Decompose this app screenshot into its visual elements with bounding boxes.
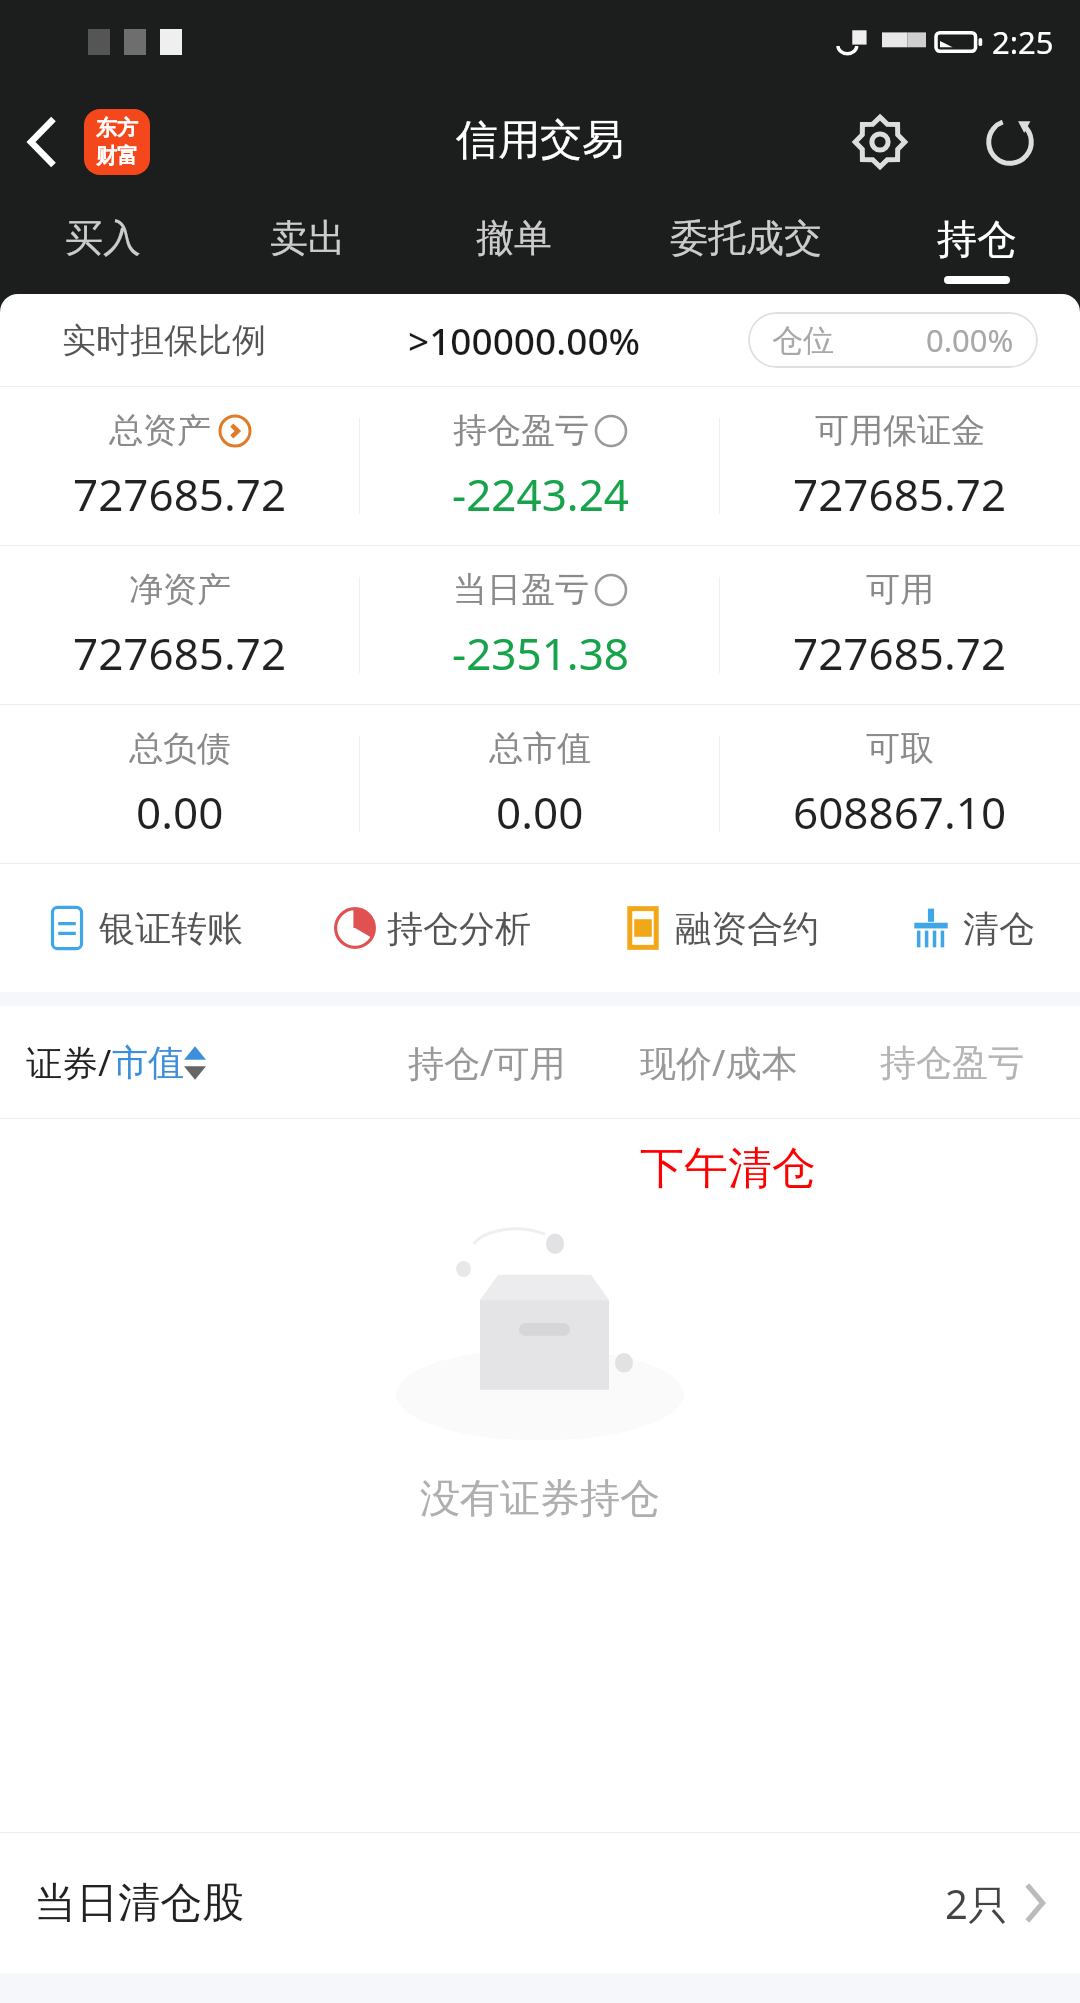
staticText: 727685.72 <box>793 464 1007 524</box>
staticText: 买入 <box>65 214 141 262</box>
staticText: 市值 <box>112 1040 184 1085</box>
staticText: 财富 <box>96 143 138 169</box>
staticText: 东方 <box>96 115 138 141</box>
staticText: 727685.72 <box>73 623 287 683</box>
staticText: 可用 <box>866 568 934 611</box>
staticText: 当日盈亏 <box>453 568 589 611</box>
staticText: 委托成交 <box>670 214 822 262</box>
staticText: >100000.00% <box>408 315 641 365</box>
staticText: 总资产 <box>109 409 211 452</box>
staticText: -2243.24 <box>452 464 629 524</box>
staticText: 净资产 <box>129 568 231 611</box>
staticText: 持仓分析 <box>387 906 531 951</box>
staticText: -2351.38 <box>452 623 629 683</box>
staticText: 2只 <box>945 1876 1008 1931</box>
button[interactable]: East Money logo <box>84 109 150 175</box>
button[interactable]: 卖出 <box>205 200 411 294</box>
button[interactable]: Back <box>0 99 86 185</box>
staticText: 总市值 <box>489 727 591 770</box>
staticText: 总负债 <box>129 727 231 770</box>
button[interactable]: 买入 <box>0 200 205 294</box>
staticText: 卖出 <box>270 214 346 262</box>
button[interactable]: 仓位 <box>748 312 1038 368</box>
staticText: 融资合约 <box>675 906 819 951</box>
staticText: 信用交易 <box>456 114 624 167</box>
staticText: 持仓盈亏 <box>453 409 589 452</box>
staticText: 下午清仓 <box>640 1141 816 1196</box>
button[interactable]: 银证转账 <box>0 864 288 992</box>
staticText: 0.00% <box>926 319 1014 361</box>
button[interactable]: 委托成交 <box>617 200 874 294</box>
staticText: 当日清仓股 <box>34 1877 244 1930</box>
staticText: 0.00 <box>136 782 224 842</box>
staticText: 可取 <box>866 727 934 770</box>
button[interactable]: 持仓盈亏 <box>880 1040 1024 1085</box>
staticText: 727685.72 <box>793 623 1007 683</box>
staticText: 实时担保比例 <box>62 319 266 362</box>
staticText: 仓位 <box>772 321 834 360</box>
button[interactable]: 当日清仓股 <box>0 1833 1080 1973</box>
button[interactable]: 持仓/可用 <box>408 1038 566 1087</box>
button[interactable]: 持仓分析 <box>288 864 576 992</box>
staticText: 2:25 <box>992 21 1054 63</box>
button[interactable]: 持仓 <box>874 200 1080 294</box>
staticText: 可用保证金 <box>815 409 985 452</box>
staticText: 0.00 <box>496 782 584 842</box>
button[interactable]: Settings <box>844 106 916 178</box>
staticText: 证券/ <box>26 1038 112 1087</box>
staticText: 727685.72 <box>73 464 287 524</box>
button[interactable]: 撤单 <box>411 200 617 294</box>
button[interactable]: Refresh <box>974 106 1046 178</box>
staticText: 持仓 <box>937 214 1017 264</box>
staticText: 清仓 <box>963 906 1035 951</box>
button[interactable]: 现价/成本 <box>640 1038 798 1087</box>
staticText: 没有证券持仓 <box>420 1473 660 1523</box>
staticText: 608867.10 <box>793 782 1007 842</box>
staticText: 撤单 <box>476 214 552 262</box>
button[interactable]: 证券/ <box>26 1038 206 1087</box>
button[interactable]: 清仓 <box>864 864 1080 992</box>
button[interactable]: 融资合约 <box>576 864 864 992</box>
staticText: 银证转账 <box>99 906 243 951</box>
